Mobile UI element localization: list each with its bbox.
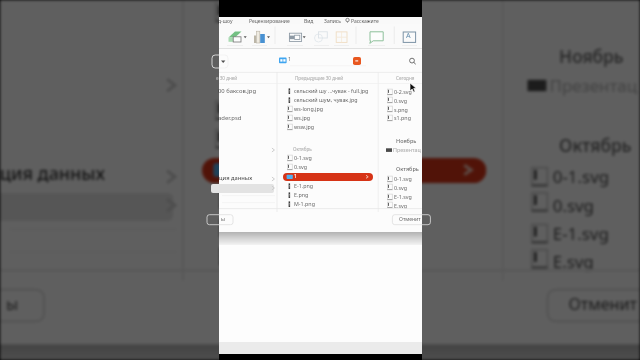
staticText: wsw.jpg xyxy=(294,123,315,130)
staticText: 0.svg xyxy=(294,163,308,170)
staticText: ция данных xyxy=(0,161,107,186)
staticText: ws.jpg xyxy=(294,114,311,121)
staticText: Расскажите xyxy=(351,18,379,25)
staticText: E.png xyxy=(237,215,284,237)
staticText: s.png xyxy=(394,106,408,113)
button[interactable] xyxy=(202,158,486,183)
staticText: 00 баксов.jpg xyxy=(218,87,257,95)
staticText: Октябрь xyxy=(396,165,419,172)
staticText: E-1.svg xyxy=(394,193,412,200)
staticText: 0-2.svg xyxy=(394,88,412,95)
staticText: Отменит xyxy=(569,294,638,316)
staticText: E.png xyxy=(294,191,309,198)
staticText: E-1.png xyxy=(237,186,300,208)
staticText: Запись xyxy=(324,18,341,25)
staticText: е 30 дней xyxy=(216,75,238,81)
staticText: Предыдущие 30 дней xyxy=(295,75,344,81)
staticText: Октябрь xyxy=(293,146,312,152)
staticText: ws-long.jpg xyxy=(294,105,324,112)
staticText: E.svg xyxy=(553,249,594,272)
staticText: E.svg xyxy=(394,202,407,209)
staticText: M-1.png xyxy=(237,243,303,265)
staticText: Презентац xyxy=(393,146,421,153)
staticText: 0.svg xyxy=(394,184,408,191)
staticText: Ноябрь xyxy=(396,137,417,144)
staticText: ы xyxy=(6,294,19,316)
staticText: Вид xyxy=(304,18,314,25)
staticText: Рецензирование xyxy=(249,18,290,25)
staticText: 1 xyxy=(288,56,291,63)
staticText: Октябрь xyxy=(234,73,294,92)
staticText: Отменит xyxy=(399,216,421,223)
button[interactable] xyxy=(283,173,373,181)
staticText: Ноябрь xyxy=(559,44,625,66)
staticText: 1 xyxy=(237,158,246,180)
staticText: д-шоу xyxy=(218,18,233,25)
staticText: сельский шум, чувак.jpg xyxy=(294,96,358,103)
staticText: 0.svg xyxy=(553,193,597,215)
staticText: 0-1.svg xyxy=(294,154,312,161)
staticText: Презентац xyxy=(550,73,638,95)
staticText: 1 xyxy=(294,173,297,180)
staticText: M-1.png xyxy=(294,200,315,207)
staticText: A xyxy=(406,30,411,40)
staticText: 0-1.svg xyxy=(237,98,294,120)
staticText: 0-1.svg xyxy=(553,164,610,186)
staticText: Октябрь xyxy=(559,133,632,155)
button[interactable]: Clear search xyxy=(353,57,361,65)
staticText: Сегодня xyxy=(396,75,415,81)
staticText: сельский шу ...чувак - full.jpg xyxy=(294,87,369,94)
staticText: E-1.svg xyxy=(553,221,610,243)
staticText: 0-1.svg xyxy=(394,175,412,182)
staticText: ader.psd xyxy=(218,114,242,122)
staticText: wsw.jpg xyxy=(237,0,303,22)
staticText: s1.png xyxy=(394,114,411,121)
staticText: 0.svg xyxy=(394,97,408,104)
staticText: ция данных xyxy=(219,174,253,182)
staticText: ы xyxy=(221,216,225,223)
staticText: E-1.png xyxy=(294,182,314,189)
button[interactable] xyxy=(211,184,274,193)
